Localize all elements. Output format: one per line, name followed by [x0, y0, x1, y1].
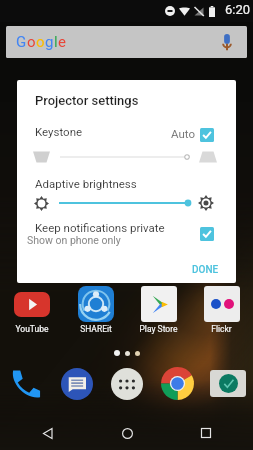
staticText: YouTube	[15, 324, 49, 334]
staticText: Keep notifications private	[35, 221, 165, 234]
staticText: o	[36, 33, 45, 51]
button[interactable]: YouTube	[0, 286, 64, 334]
staticText: Keystone	[35, 125, 83, 138]
staticText: l	[54, 33, 58, 51]
button[interactable]: Toggle	[200, 128, 214, 142]
button[interactable]: Flickr	[190, 286, 253, 334]
button[interactable]: Camera	[209, 365, 246, 402]
button[interactable]: Toggle	[200, 227, 214, 241]
button[interactable]: Apps	[108, 365, 145, 402]
button[interactable]: G	[6, 26, 247, 58]
staticText: Projector settings	[35, 93, 139, 108]
staticText: G	[16, 33, 27, 51]
staticText: DONE	[192, 264, 219, 276]
staticText: Show on phone only	[27, 234, 121, 246]
button[interactable]: SHAREit	[64, 286, 127, 334]
staticText: Adaptive brightness	[35, 177, 137, 190]
staticText: o	[27, 33, 36, 51]
button[interactable]: Messages	[58, 365, 95, 402]
staticText: g	[45, 33, 54, 51]
button[interactable]: Phone	[7, 365, 44, 402]
button[interactable]: Chrome	[159, 365, 196, 402]
button[interactable]: Play Store	[127, 286, 190, 334]
staticText: Play Store	[139, 324, 178, 334]
button[interactable]: Recents	[193, 420, 219, 446]
staticText: 6:20	[225, 2, 251, 17]
staticText: e	[58, 33, 66, 51]
button[interactable]: DONE	[186, 258, 225, 282]
button[interactable]: Home	[114, 420, 140, 446]
staticText: Flickr	[211, 324, 232, 334]
staticText: Auto	[171, 127, 195, 140]
button[interactable]: Back	[34, 420, 60, 446]
staticText: SHAREit	[80, 324, 112, 334]
other: Voice search	[223, 33, 231, 51]
